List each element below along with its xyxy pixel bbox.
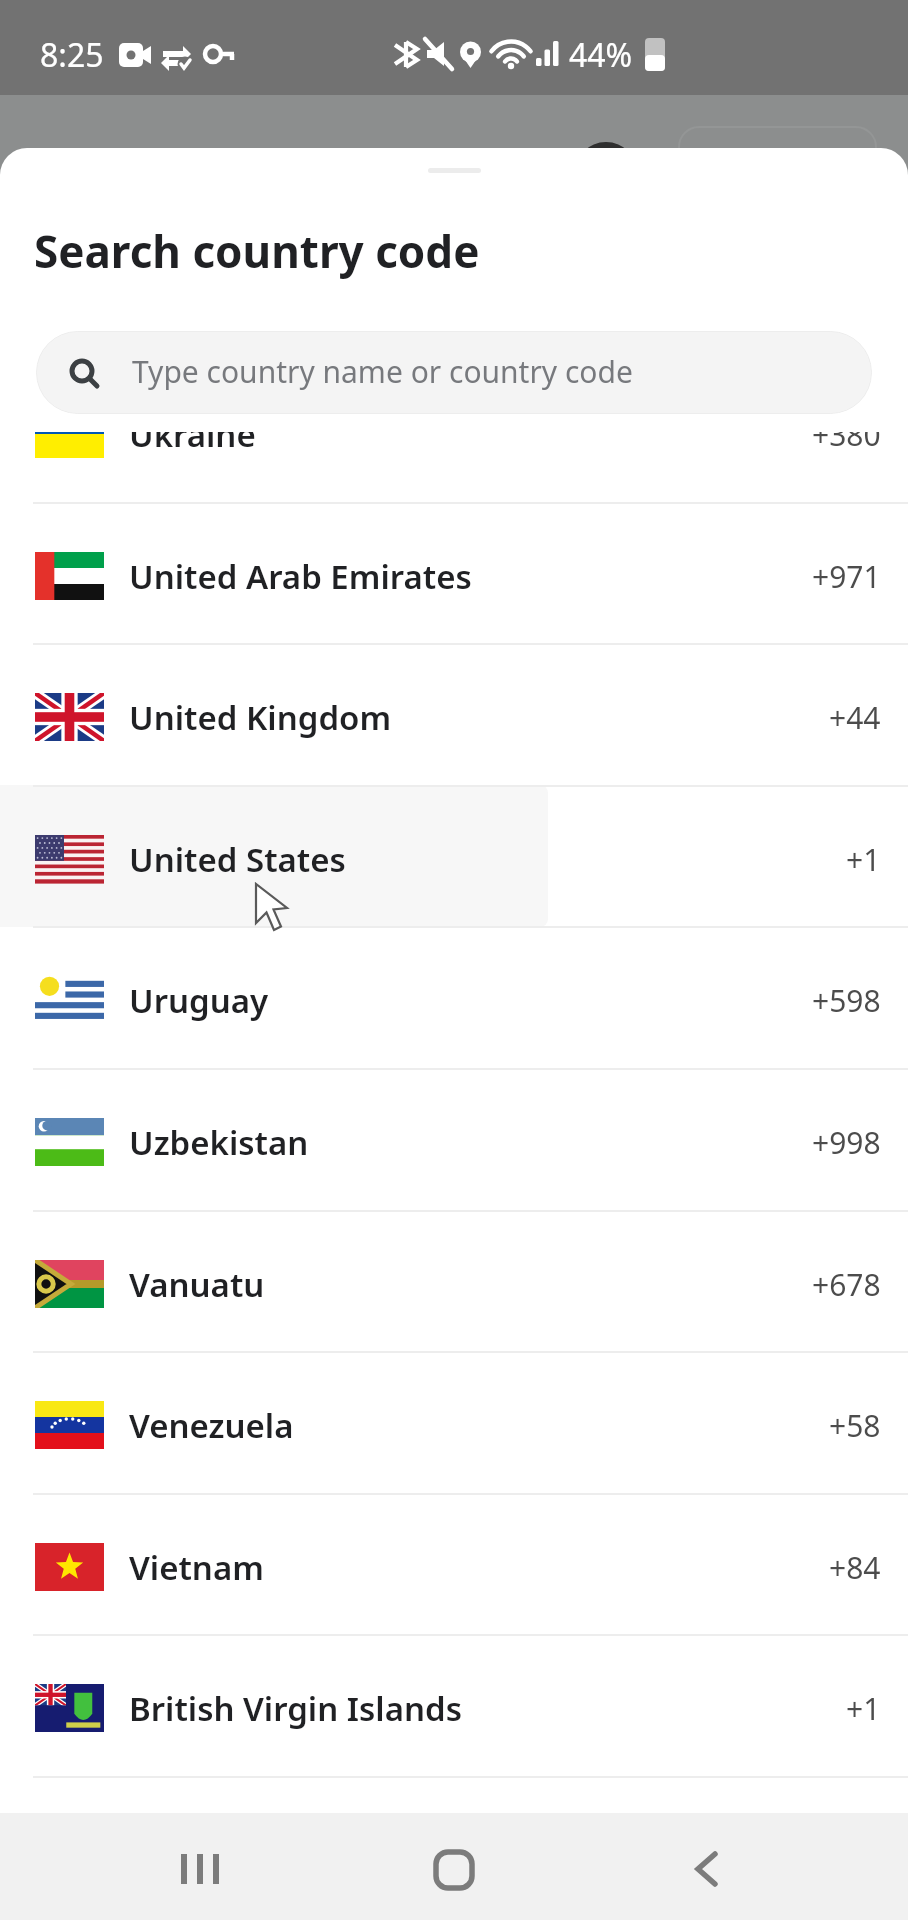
staticText: +678	[812, 1264, 881, 1305]
staticText: United Arab Emirates	[129, 554, 472, 599]
button[interactable]: United Arab Emirates	[0, 502, 908, 644]
button[interactable]: Uruguay	[0, 926, 908, 1068]
button[interactable]: Home	[406, 1813, 908, 1920]
staticText: 8:25	[40, 33, 104, 77]
staticText: +84	[829, 1547, 881, 1588]
staticText: +598	[812, 980, 881, 1021]
button[interactable]: United Kingdom	[0, 643, 908, 785]
button[interactable]: Uzbekistan	[0, 1068, 908, 1210]
staticText: Uruguay	[129, 978, 269, 1023]
button[interactable]: Vanuatu	[0, 1210, 908, 1352]
staticText: +998	[812, 1122, 881, 1163]
button[interactable]: Recents	[151, 1813, 908, 1920]
staticText: Uzbekistan	[129, 1120, 309, 1165]
button[interactable]: British Virgin Islands	[0, 1634, 908, 1776]
staticText: +44	[829, 697, 881, 738]
staticText: Type country name or country code	[132, 351, 633, 392]
staticText: 44%	[569, 33, 633, 77]
button[interactable]: Type country name or country code	[36, 331, 872, 414]
staticText: +58	[829, 1405, 881, 1446]
staticText: +1	[846, 839, 881, 880]
staticText: Vietnam	[129, 1545, 264, 1590]
button[interactable]: Vietnam	[0, 1493, 908, 1635]
staticText: +1	[846, 1688, 881, 1729]
button[interactable]: Back	[661, 1813, 908, 1920]
staticText: United Kingdom	[129, 695, 392, 740]
staticText: British Virgin Islands	[129, 1686, 462, 1731]
staticText: Search country code	[34, 221, 480, 281]
button[interactable]: Ukraine	[0, 432, 908, 502]
button[interactable]: Venezuela	[0, 1351, 908, 1493]
staticText: +971	[812, 556, 881, 597]
staticText: United States	[129, 837, 346, 882]
staticText: Vanuatu	[129, 1262, 265, 1307]
button[interactable]: United States	[0, 785, 908, 927]
staticText: +380	[812, 432, 881, 455]
staticText: Ukraine	[129, 432, 256, 457]
staticText: Venezuela	[129, 1403, 294, 1448]
